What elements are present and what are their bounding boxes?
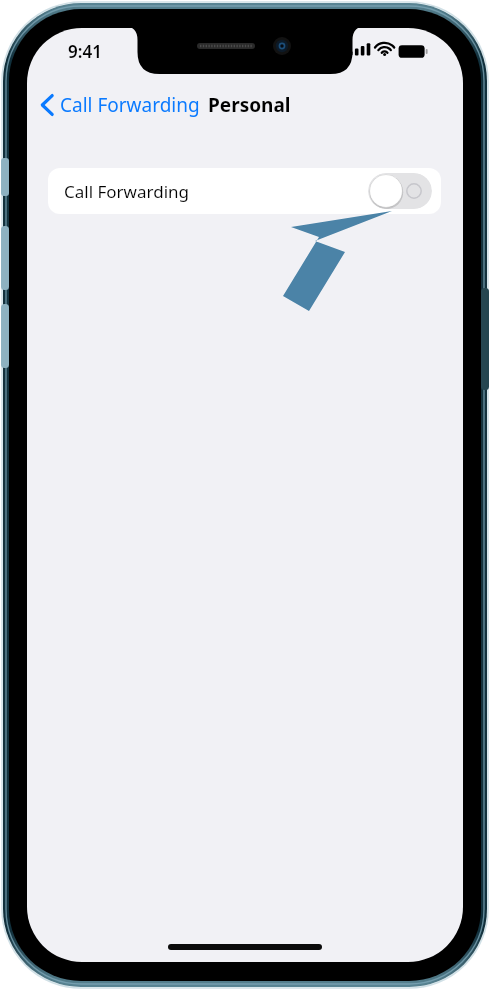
button[interactable]: Call Forwarding [48,168,441,214]
staticText: Personal [208,92,291,118]
button[interactable]: Call Forwarding toggle, off [368,173,432,209]
button[interactable]: Call Forwarding [35,88,206,122]
staticText: Call Forwarding [60,92,200,118]
staticText: Call Forwarding [64,180,189,203]
staticText: 9:41 [68,40,102,63]
